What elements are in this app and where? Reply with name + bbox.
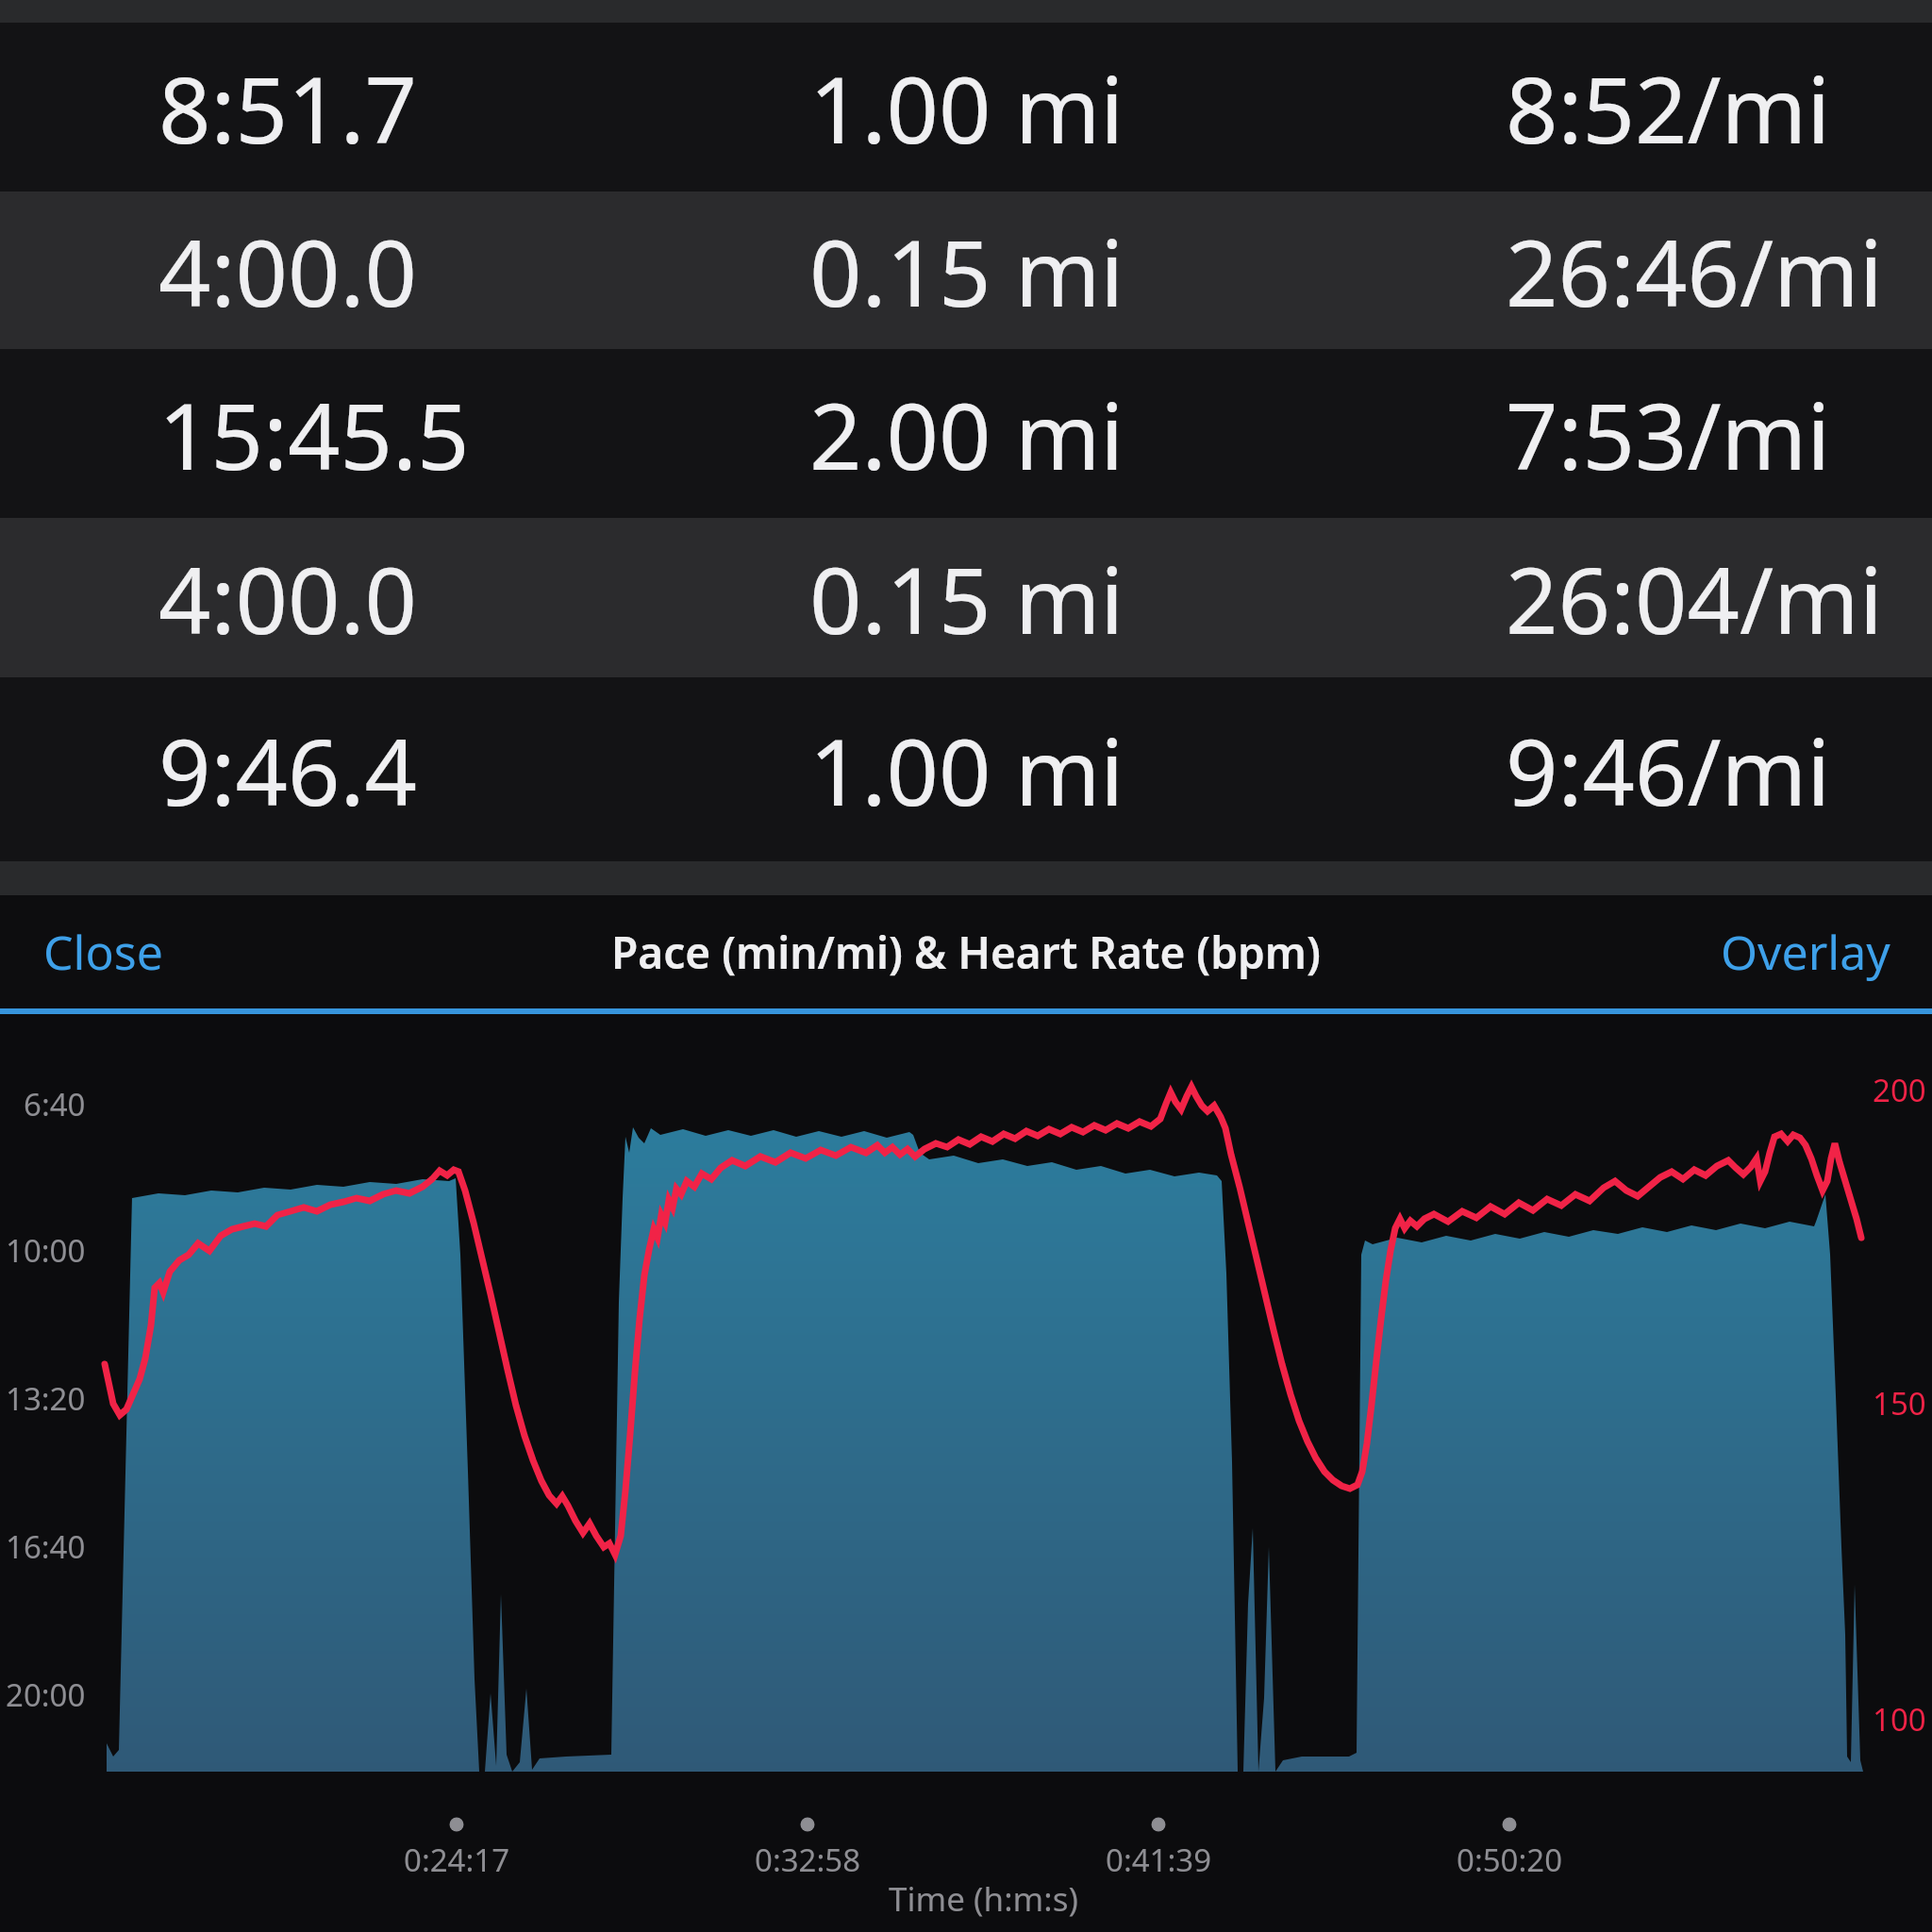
- staticText: Time (h:m:s): [889, 1876, 1078, 1922]
- staticText: Close: [43, 920, 163, 984]
- staticText: 0:24:17: [404, 1839, 510, 1881]
- staticText: 4:00.0: [158, 208, 417, 333]
- staticText: 26:04/mi: [1506, 536, 1883, 660]
- staticText: 7:53/mi: [1506, 372, 1831, 496]
- staticText: 100: [1873, 1698, 1926, 1740]
- staticText: 9:46.4: [158, 708, 417, 832]
- staticText: 6:40: [24, 1083, 86, 1125]
- staticText: 0.15 mi: [809, 536, 1124, 660]
- staticText: 1.00 mi: [809, 45, 1124, 170]
- staticText: 0:41:39: [1106, 1839, 1212, 1881]
- button[interactable]: Close: [0, 903, 186, 1001]
- staticText: 15:45.5: [158, 372, 470, 496]
- staticText: 0:32:58: [755, 1839, 861, 1881]
- staticText: 8:51.7: [158, 45, 417, 170]
- staticText: 10:00: [6, 1229, 86, 1272]
- staticText: 4:00.0: [158, 536, 417, 660]
- staticText: 0:50:20: [1457, 1839, 1563, 1881]
- staticText: 200: [1873, 1069, 1926, 1111]
- staticText: 1.00 mi: [809, 708, 1124, 832]
- staticText: 13:20: [6, 1377, 86, 1420]
- staticText: 16:40: [6, 1525, 86, 1568]
- staticText: 26:46/mi: [1506, 208, 1883, 333]
- staticText: 0.15 mi: [809, 208, 1124, 333]
- staticText: 150: [1873, 1382, 1926, 1424]
- button[interactable]: Overlay: [1698, 903, 1932, 1001]
- staticText: Pace (min/mi) & Heart Rate (bpm): [611, 923, 1321, 982]
- staticText: Overlay: [1721, 920, 1890, 984]
- staticText: 2.00 mi: [809, 372, 1124, 496]
- staticText: 9:46/mi: [1506, 708, 1831, 832]
- staticText: 8:52/mi: [1506, 45, 1831, 170]
- staticText: 20:00: [6, 1674, 86, 1716]
